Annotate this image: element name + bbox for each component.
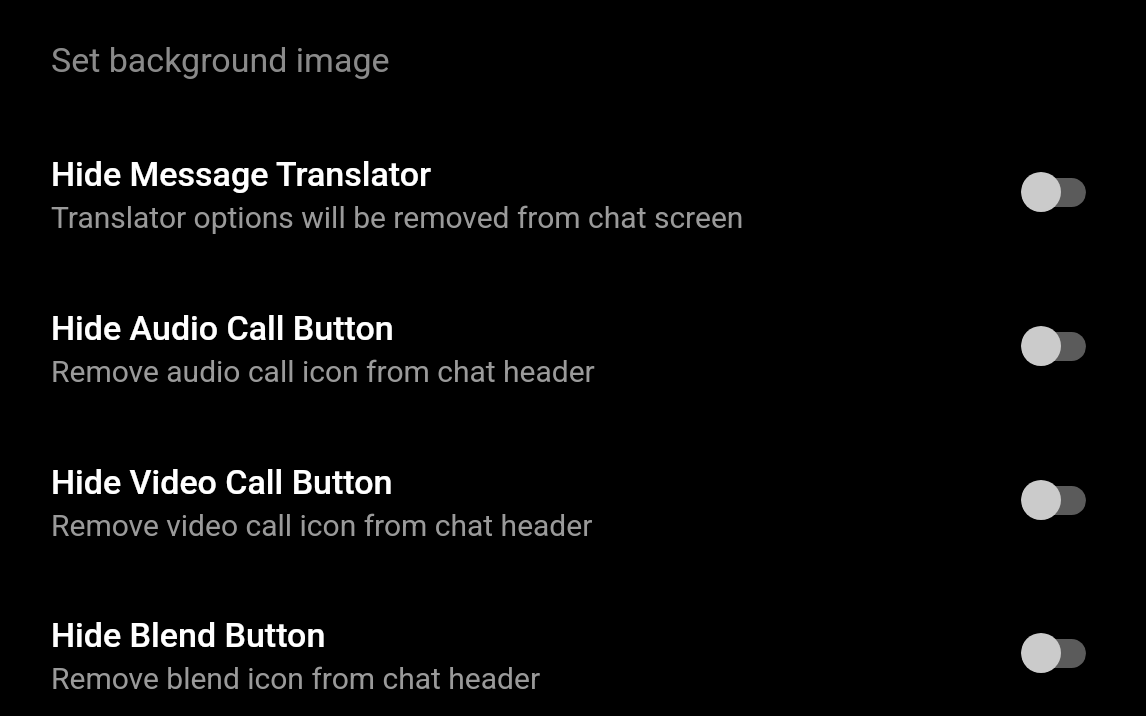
button[interactable]: Set background image — [0, 0, 1146, 120]
staticText: Hide Blend Button — [51, 615, 326, 655]
staticText: Hide Audio Call Button — [51, 308, 394, 348]
button[interactable]: Hide Blend Button — [0, 578, 1146, 716]
staticText: Remove blend icon from chat header — [51, 661, 541, 696]
staticText: Remove video call icon from chat header — [51, 508, 593, 543]
button[interactable]: Hide Video Call Button — [0, 425, 1146, 579]
staticText: Hide Message Translator — [51, 154, 431, 194]
staticText: Remove audio call icon from chat header — [51, 354, 595, 389]
button[interactable]: Hide Blend Button — [1021, 629, 1086, 677]
button[interactable]: Hide Audio Call Button — [0, 271, 1146, 425]
button[interactable]: Hide Video Call Button — [1021, 476, 1086, 524]
staticText: Translator options will be removed from … — [51, 200, 744, 235]
staticText: Set background image — [51, 40, 390, 80]
button[interactable]: Hide Message Translator — [0, 117, 1146, 271]
button[interactable]: Hide Audio Call Button — [1021, 322, 1086, 370]
staticText: Hide Video Call Button — [51, 462, 393, 502]
button[interactable]: Hide Message Translator — [1021, 168, 1086, 216]
